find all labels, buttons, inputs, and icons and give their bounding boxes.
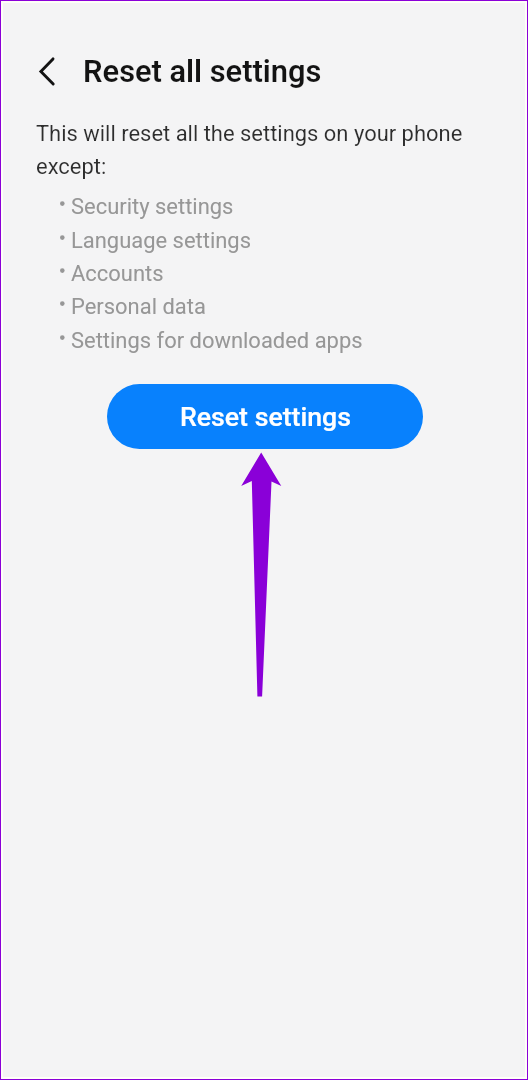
button[interactable]: Reset settings: [107, 384, 423, 449]
staticText: Accounts: [71, 261, 164, 287]
button[interactable]: Back: [25, 49, 73, 97]
staticText: Reset all settings: [83, 53, 322, 89]
staticText: Settings for downloaded apps: [71, 328, 363, 354]
staticText: except:: [36, 154, 107, 180]
staticText: This will reset all the settings on your…: [36, 121, 463, 147]
staticText: Reset settings: [180, 401, 351, 432]
staticText: Language settings: [71, 228, 251, 254]
staticText: Security settings: [71, 194, 234, 220]
staticText: Personal data: [71, 294, 206, 320]
